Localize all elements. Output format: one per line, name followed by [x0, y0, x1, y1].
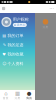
staticText: ☺ [2, 61, 6, 66]
staticText: 分类 [14, 96, 20, 100]
staticText: ● [27, 90, 32, 96]
staticText: ♥ [2, 52, 6, 56]
button[interactable]: ⌂ [0, 90, 12, 100]
staticText: 首页 [3, 96, 9, 100]
staticText: 我的 [26, 96, 32, 100]
staticText: ⌂ [4, 90, 7, 96]
staticText: 用户昵称 [13, 17, 29, 22]
button[interactable]: ✎ [0, 40, 35, 50]
staticText: 分类 [42, 25, 48, 29]
button[interactable]: ▦ [12, 90, 23, 100]
staticText: 我的订单 [7, 33, 23, 38]
staticText: 我的收藏 [7, 52, 23, 57]
button[interactable]: ● [23, 90, 35, 100]
button[interactable]: More [47, 5, 56, 12]
button[interactable]: Menu [0, 4, 7, 12]
staticText: ✎ [3, 43, 6, 47]
button[interactable]: ☺ [0, 59, 35, 68]
staticText: 会员中心 [14, 23, 26, 27]
staticText: 我的足迹 [7, 42, 23, 47]
staticText: ▦ [15, 90, 20, 96]
staticText: ▤ [2, 33, 6, 38]
button[interactable]: ♥ [0, 50, 35, 59]
button[interactable]: ▤ [0, 31, 35, 40]
staticText: 个人资料 [7, 61, 23, 66]
